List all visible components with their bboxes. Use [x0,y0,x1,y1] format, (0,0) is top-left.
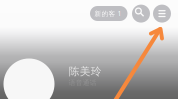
button[interactable]: 新的客 1 [90,6,127,21]
staticText: 新的客 1 [94,9,121,18]
staticText: 语音通话 [69,79,97,87]
staticText: 陈美玲 [69,65,102,78]
button[interactable]: Menu [153,5,171,23]
button[interactable]: Search [132,5,150,23]
